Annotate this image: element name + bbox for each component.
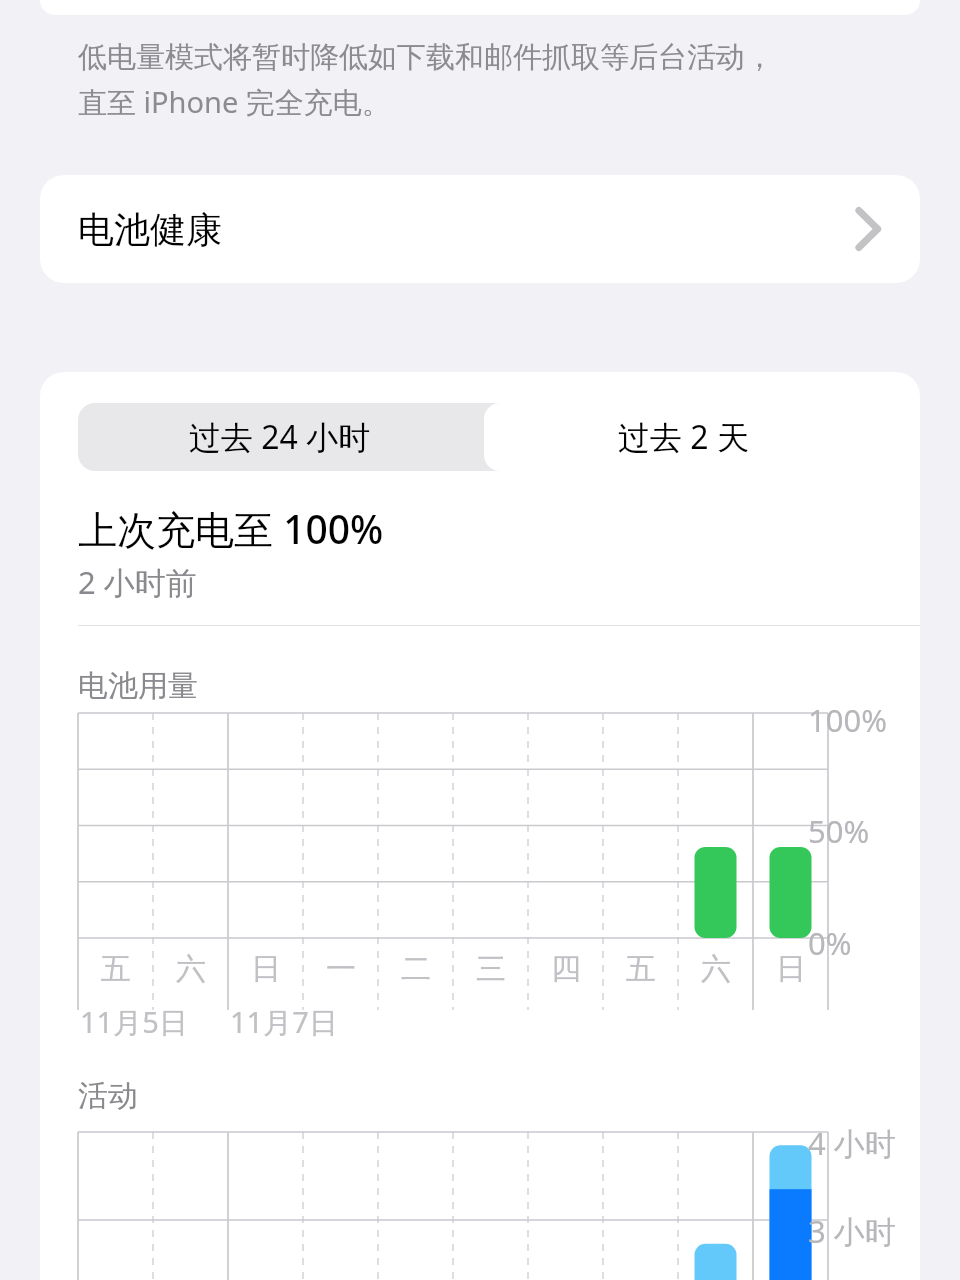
staticText: 100% — [808, 699, 887, 741]
staticText: 3 小时 — [808, 1210, 896, 1252]
staticText: 上次充电至 100% — [78, 502, 384, 555]
staticText: 电池健康 — [78, 207, 222, 252]
staticText: 低电量模式将暂时降低如下载和邮件抓取等后台活动， — [78, 39, 774, 76]
staticText: 直至 iPhone 完全充电。 — [78, 82, 391, 122]
staticText: 过去 2 天 — [618, 415, 749, 459]
staticText: 一 — [326, 950, 356, 988]
staticText: 过去 24 小时 — [189, 415, 371, 459]
staticText: 活动 — [78, 1077, 138, 1115]
button[interactable]: 过去 2 天 — [484, 403, 882, 471]
staticText: 电池用量 — [78, 667, 198, 705]
staticText: 0% — [808, 922, 852, 964]
staticText: 2 小时前 — [78, 561, 197, 603]
staticText: 日 — [776, 950, 806, 988]
staticText: 五 — [626, 950, 656, 988]
staticText: 六 — [701, 950, 731, 988]
staticText: 五 — [101, 950, 131, 988]
staticText: 11月7日 — [230, 1002, 338, 1042]
staticText: 11月5日 — [80, 1002, 188, 1042]
staticText: 二 — [401, 950, 431, 988]
staticText: 4 小时 — [808, 1122, 896, 1164]
staticText: 50% — [808, 810, 870, 852]
button[interactable]: 电池健康 — [40, 175, 920, 283]
staticText: 四 — [551, 950, 581, 988]
button[interactable]: 过去 24 小时 — [78, 403, 482, 471]
staticText: 三 — [476, 950, 506, 988]
staticText: 六 — [176, 950, 206, 988]
other: 电池健康 — [856, 208, 880, 250]
staticText: 日 — [251, 950, 281, 988]
